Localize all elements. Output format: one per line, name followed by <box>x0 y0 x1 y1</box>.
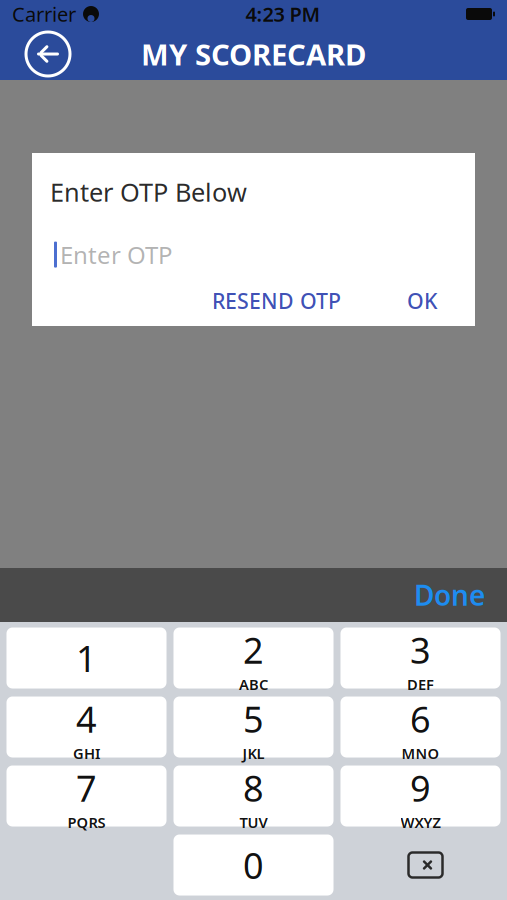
staticText: WXYZ <box>400 813 440 832</box>
button[interactable]: 9 <box>340 765 500 826</box>
button[interactable]: 0 <box>173 834 333 895</box>
staticText: Enter OTP Below <box>50 175 247 209</box>
button[interactable]: 1 <box>6 627 166 688</box>
staticText: JKL <box>242 744 264 763</box>
staticText: 2 <box>243 626 264 674</box>
staticText: 6 <box>410 695 431 743</box>
staticText: Enter OTP <box>60 239 173 270</box>
staticText: TUV <box>239 813 267 832</box>
button[interactable]: 4 <box>6 696 166 757</box>
staticText: 7 <box>76 764 97 812</box>
staticText: 5 <box>243 695 264 743</box>
button[interactable]: 5 <box>173 696 333 757</box>
staticText: Carrier <box>12 1 76 27</box>
staticText: Done <box>414 576 485 614</box>
staticText: RESEND OTP <box>212 286 341 315</box>
button[interactable]: Back <box>22 28 74 80</box>
button[interactable]: 6 <box>340 696 500 757</box>
staticText: 4 <box>76 695 97 743</box>
button[interactable]: 7 <box>6 765 166 826</box>
staticText: 0 <box>243 841 264 889</box>
staticText: GHI <box>73 744 100 763</box>
staticText: 9 <box>410 764 431 812</box>
button[interactable]: Delete <box>340 834 500 895</box>
staticText: 8 <box>243 764 264 812</box>
button[interactable]: 2 <box>173 627 333 688</box>
staticText: 4:23 PM <box>245 1 320 27</box>
staticText: MNO <box>401 744 439 763</box>
staticText: PQRS <box>67 813 105 832</box>
button[interactable]: RESEND OTP <box>202 278 351 323</box>
button[interactable]: Done <box>402 568 497 622</box>
staticText: 1 <box>76 634 97 682</box>
staticText: OK <box>407 286 437 315</box>
staticText: MY SCORECARD <box>141 34 366 73</box>
staticText: ABC <box>239 675 268 694</box>
button[interactable]: 8 <box>173 765 333 826</box>
staticText: 3 <box>410 626 431 674</box>
button[interactable]: OK <box>397 278 447 323</box>
button[interactable]: 3 <box>340 627 500 688</box>
staticText: DEF <box>407 675 434 694</box>
